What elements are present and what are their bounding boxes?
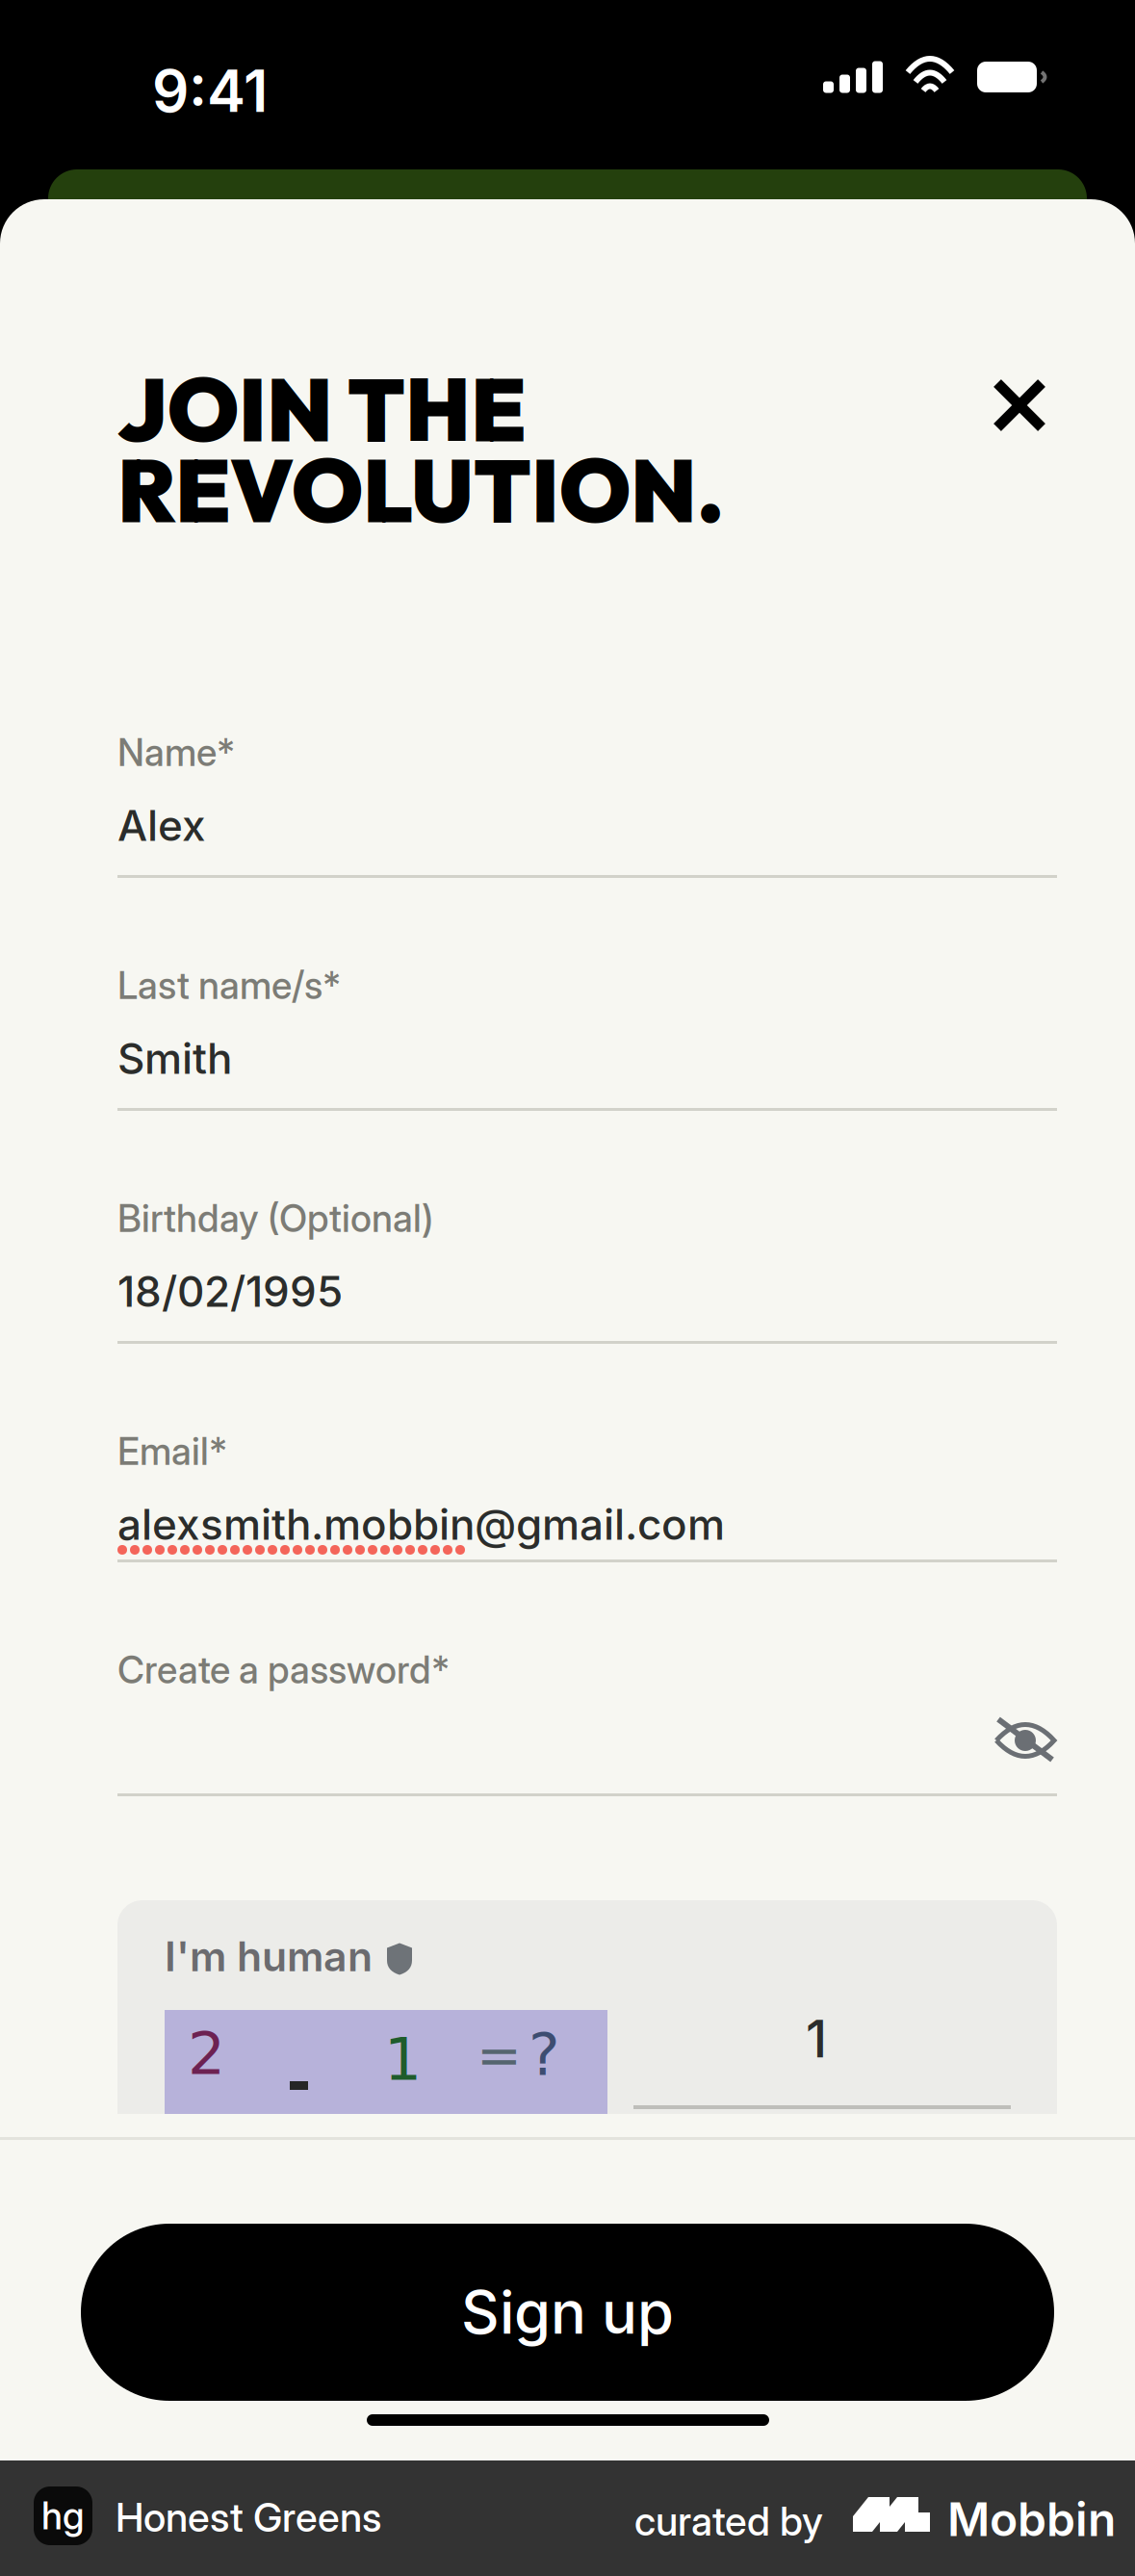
staticText: JOIN THE — [117, 354, 527, 464]
staticText: Mobbin — [947, 2491, 1116, 2547]
staticText: 18/02/1995 — [117, 1266, 343, 1317]
staticText: I'm human — [165, 1931, 373, 1981]
staticText: Create a password* — [117, 1647, 450, 1692]
staticText: Honest Greens — [116, 2493, 381, 2541]
staticText: REVOLUTION. — [117, 435, 724, 545]
staticText: curated by — [634, 2497, 823, 2545]
staticText: Alex — [117, 800, 206, 851]
staticText: 1 — [384, 2025, 422, 2094]
staticText: = — [477, 2024, 522, 2087]
staticText: 1 — [806, 2008, 827, 2070]
staticText: Sign up — [461, 2277, 674, 2348]
button[interactable]: Show password — [951, 1705, 1057, 1774]
staticText: Birthday (Optional) — [117, 1196, 433, 1241]
staticText: 9:41 — [152, 56, 268, 126]
button[interactable]: Close — [967, 352, 1072, 458]
staticText: Last name/s* — [117, 963, 341, 1008]
staticText: Name* — [117, 730, 235, 775]
staticText: Smith — [117, 1033, 232, 1084]
button[interactable]: Sign up — [81, 2224, 1054, 2401]
staticText: hg — [41, 2493, 85, 2538]
staticText: Email* — [117, 1429, 227, 1474]
staticText: alexsmith.mobbin@gmail.com — [117, 1499, 725, 1550]
staticText: ? — [529, 2020, 560, 2089]
staticText: 2 — [188, 2019, 225, 2088]
